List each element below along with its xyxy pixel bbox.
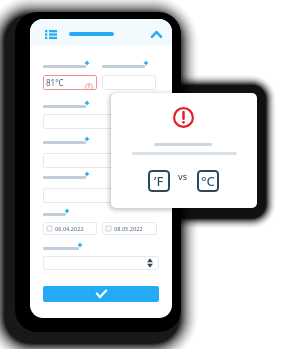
button[interactable] [43,114,159,129]
button[interactable]: °C [197,170,219,192]
button[interactable] [43,153,159,168]
staticText: °C [201,172,215,190]
button[interactable]: Menu [30,19,172,46]
button[interactable]: 06.04.2022 [43,222,97,235]
staticText: vs [178,170,188,182]
button[interactable]: 08.05.2022 [102,222,157,235]
button[interactable] [102,75,156,90]
staticText: 08.05.2022 [114,225,143,233]
button[interactable]: Submit [43,286,159,302]
button[interactable]: 81°C [43,75,97,90]
other: Menu [45,30,57,39]
staticText: 06.04.2022 [55,225,84,233]
button[interactable] [43,188,159,203]
button[interactable]: ʼF [148,170,170,192]
staticText: 81°C [46,77,64,88]
staticText: ʼF [154,172,164,190]
button[interactable] [43,256,159,270]
other: Collapse [151,29,162,40]
